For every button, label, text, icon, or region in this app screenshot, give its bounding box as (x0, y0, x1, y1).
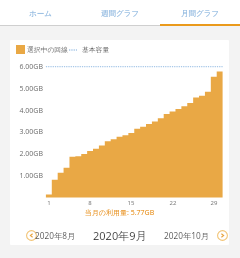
other: Previous month (26, 230, 37, 241)
staticText: 2020年10月 (164, 230, 210, 241)
staticText: ホーム (29, 9, 52, 18)
staticText: 1 (41, 199, 57, 207)
staticText: 4.00GB (13, 106, 43, 116)
staticText: 22 (165, 199, 181, 207)
button[interactable]: 月間グラフ (160, 0, 240, 26)
staticText: 29 (206, 199, 222, 207)
staticText: 選択中の回線 (27, 45, 68, 54)
button[interactable]: 2020年10月 (171, 230, 228, 241)
button[interactable]: Previous month (26, 230, 78, 241)
other: Next month (217, 230, 228, 241)
staticText: 2020年9月 (93, 228, 147, 243)
staticText: 6.00GB (13, 62, 43, 72)
staticText: 1.00GB (13, 171, 43, 181)
staticText: 2.00GB (13, 149, 43, 159)
staticText: 週間グラフ (101, 9, 140, 18)
staticText: 当月の利用量: 5.77GB (10, 208, 229, 218)
staticText: 2020年8月 (35, 230, 76, 241)
button[interactable]: 週間グラフ (80, 0, 160, 26)
button[interactable]: ホーム (0, 0, 80, 26)
staticText: 5.00GB (13, 84, 43, 94)
staticText: 3.00GB (13, 127, 43, 137)
staticText: 月間グラフ (181, 9, 220, 18)
staticText: 15 (123, 199, 139, 207)
staticText: 8 (82, 199, 98, 207)
staticText: 基本容量 (82, 45, 110, 54)
